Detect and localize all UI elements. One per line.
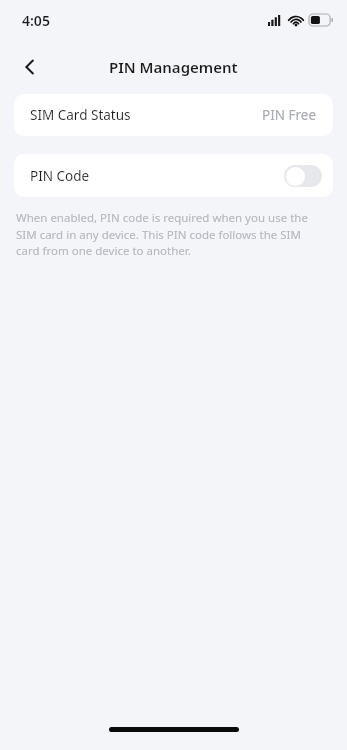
button[interactable]: PIN Code [14,154,333,197]
button[interactable]: PIN Code toggle, off [284,165,322,187]
button[interactable]: SIM Card Status [14,94,333,136]
button[interactable]: Back [10,47,50,87]
staticText: PIN Management [109,57,238,77]
staticText: When enabled, PIN code is required when … [16,210,325,258]
staticText: 4:05 [22,11,50,30]
staticText: PIN Free [262,106,317,124]
staticText: PIN Code [30,167,90,185]
staticText: SIM Card Status [30,106,131,124]
